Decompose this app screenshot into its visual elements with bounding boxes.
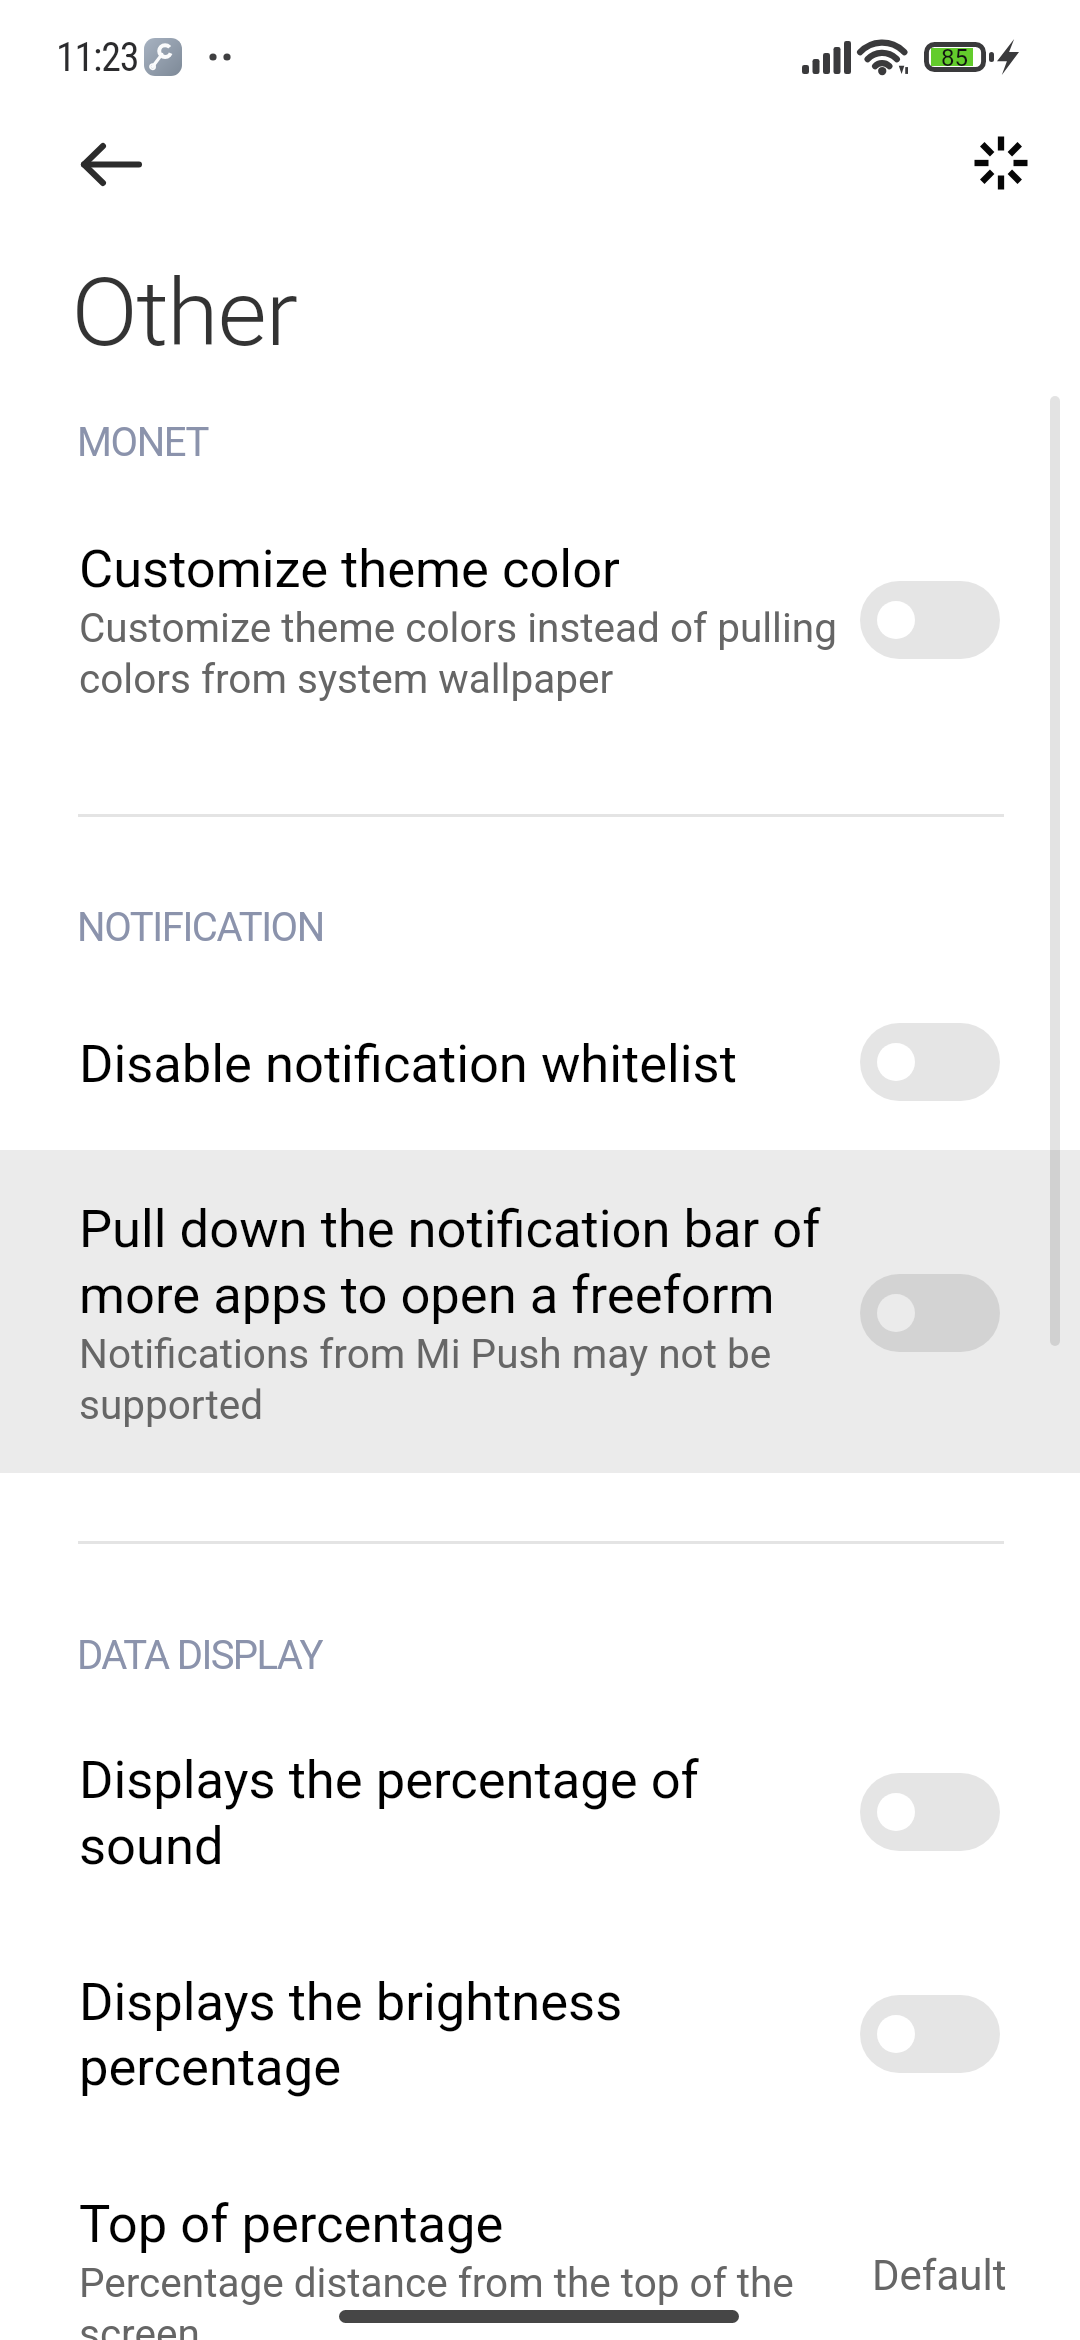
- staticText: NOTIFICATION: [77, 904, 324, 951]
- staticText: colors from system wallpaper: [79, 655, 614, 702]
- button[interactable]: Toggle: [860, 1773, 1000, 1851]
- staticText: Other: [72, 259, 298, 368]
- staticText: Disable notification whitelist: [79, 1033, 737, 1095]
- staticText: DATA DISPLAY: [77, 1632, 322, 1679]
- staticText: Displays the brightness: [79, 1971, 623, 2033]
- staticText: Notifications from Mi Push may not be: [79, 1330, 772, 1377]
- staticText: Default: [872, 2251, 1007, 2300]
- staticText: Displays the percentage of: [79, 1749, 699, 1811]
- button[interactable]: Back: [54, 107, 166, 219]
- button[interactable]: Disable notification whitelist: [0, 995, 1080, 1150]
- staticText: percentage: [79, 2036, 341, 2098]
- staticText: MONET: [77, 419, 208, 466]
- staticText: Top of percentage: [79, 2193, 504, 2255]
- staticText: Customize theme colors instead of pullin…: [79, 604, 837, 651]
- button[interactable]: Displays the brightness: [0, 1940, 1080, 2130]
- staticText: more apps to open a freeform: [79, 1264, 775, 1326]
- button[interactable]: Toggle: [860, 581, 1000, 659]
- staticText: 11:23: [56, 34, 139, 81]
- staticText: Pull down the notification bar of: [79, 1198, 821, 1260]
- button[interactable]: Pull down the notification bar of: [0, 1150, 1080, 1473]
- button[interactable]: Refresh: [945, 107, 1057, 219]
- button[interactable]: Customize theme color: [0, 505, 1080, 755]
- staticText: 85: [941, 44, 968, 72]
- button[interactable]: Displays the percentage of: [0, 1720, 1080, 1910]
- button[interactable]: Toggle: [860, 1023, 1000, 1101]
- button[interactable]: Toggle: [860, 1995, 1000, 2073]
- button[interactable]: Top of percentage: [0, 2160, 1080, 2340]
- button[interactable]: Toggle: [860, 1274, 1000, 1352]
- staticText: screen: [79, 2310, 200, 2340]
- staticText: sound: [79, 1815, 224, 1877]
- staticText: Percentage distance from the top of the: [79, 2259, 794, 2306]
- staticText: supported: [79, 1381, 264, 1428]
- staticText: Customize theme color: [79, 538, 620, 600]
